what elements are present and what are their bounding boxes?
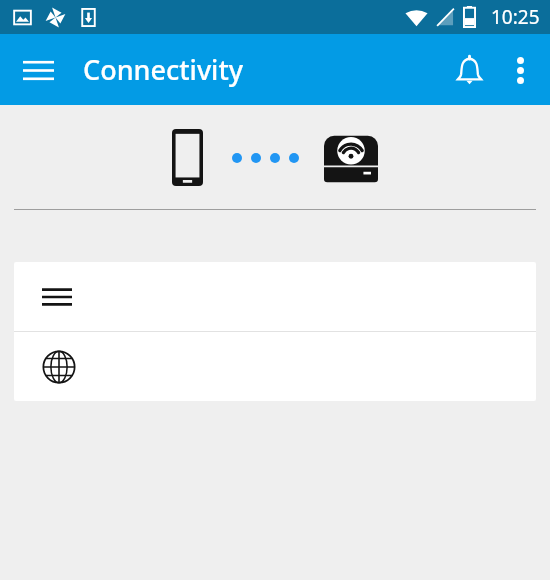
staticText: Connectivity (83, 51, 244, 88)
button[interactable]: More options (496, 46, 544, 94)
button[interactable]: Notifications (442, 43, 496, 97)
button[interactable]: Open navigation menu (10, 42, 66, 98)
staticText: 10:25 (491, 4, 540, 30)
button[interactable]: Network (14, 332, 536, 401)
button[interactable]: List view (14, 262, 536, 331)
